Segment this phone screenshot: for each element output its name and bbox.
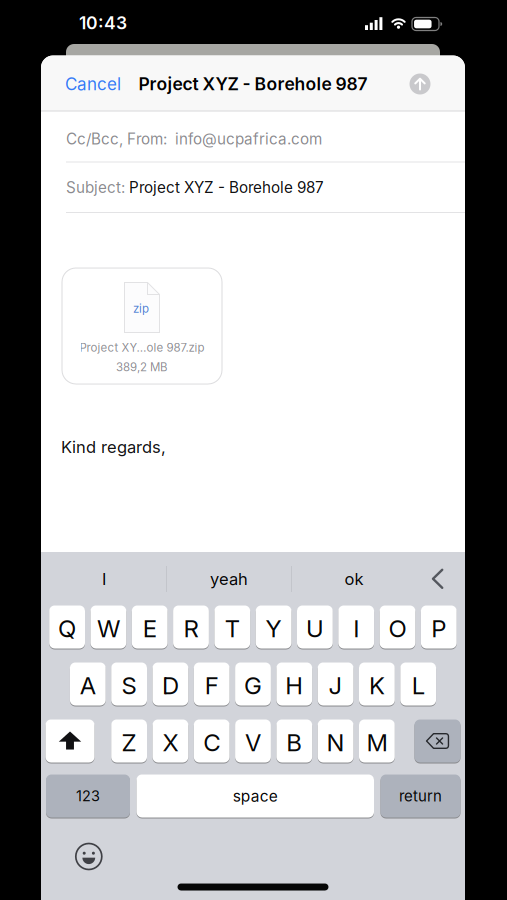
staticText: D <box>162 671 179 700</box>
button[interactable]: T <box>214 605 250 649</box>
button[interactable]: X <box>152 719 188 763</box>
button[interactable]: I <box>338 605 374 649</box>
button[interactable]: Cc/Bcc, From: info@ucpafrica.com <box>66 115 440 163</box>
staticText: ok <box>344 569 363 589</box>
button[interactable]: J <box>318 662 353 706</box>
button[interactable]: S <box>111 662 147 706</box>
button[interactable]: Shift <box>45 719 94 763</box>
staticText: F <box>205 671 219 700</box>
staticText: Cc/Bcc, From: info@ucpafrica.com <box>66 130 322 148</box>
button[interactable]: G <box>235 662 271 706</box>
staticText: 10:43 <box>79 12 127 34</box>
button[interactable]: Hide predictions <box>430 569 446 589</box>
staticText: space <box>233 787 278 805</box>
button[interactable]: R <box>173 605 209 649</box>
button[interactable]: Send <box>409 73 430 94</box>
staticText: S <box>122 671 137 700</box>
button[interactable]: Cancel <box>65 74 121 94</box>
staticText: I <box>102 569 106 589</box>
staticText: Q <box>58 614 76 643</box>
button[interactable]: ok <box>299 562 409 596</box>
staticText: L <box>412 671 425 700</box>
staticText: zip <box>133 301 149 315</box>
button[interactable]: M <box>359 719 395 763</box>
staticText: V <box>245 728 261 757</box>
staticText: 389,2 MB <box>116 360 168 374</box>
staticText: H <box>285 671 303 700</box>
staticText: Y <box>266 614 282 643</box>
staticText: C <box>203 728 220 757</box>
button[interactable]: V <box>235 719 271 763</box>
staticText: J <box>329 671 343 700</box>
staticText: U <box>306 614 324 643</box>
button[interactable]: Q <box>49 605 85 649</box>
button[interactable]: I <box>49 562 159 596</box>
button[interactable]: 123 <box>46 774 130 818</box>
staticText: yeah <box>210 569 248 589</box>
staticText: X <box>162 728 178 757</box>
staticText: A <box>80 671 96 700</box>
staticText: Subject: <box>66 178 129 197</box>
button[interactable]: P <box>421 605 457 649</box>
button[interactable]: F <box>194 662 230 706</box>
staticText: Kind regards, <box>61 437 166 457</box>
button[interactable]: yeah <box>174 562 284 596</box>
button[interactable]: Z <box>111 719 147 763</box>
staticText: T <box>225 614 240 643</box>
button[interactable]: H <box>276 662 312 706</box>
staticText: N <box>327 728 345 757</box>
button[interactable]: W <box>90 605 126 649</box>
staticText: 123 <box>76 787 100 805</box>
button[interactable]: C <box>194 719 230 763</box>
button[interactable]: U <box>297 605 333 649</box>
staticText: P <box>431 614 446 643</box>
button[interactable]: A <box>70 662 106 706</box>
button[interactable]: O <box>380 605 415 649</box>
staticText: Project XYZ - Borehole 987 <box>129 178 324 197</box>
button[interactable]: E <box>132 605 168 649</box>
staticText: E <box>143 614 157 643</box>
button[interactable]: D <box>152 662 188 706</box>
staticText: I <box>353 614 359 643</box>
staticText: G <box>244 671 262 700</box>
staticText: Project XY…ole 987.zip <box>79 340 204 354</box>
staticText: K <box>369 671 385 700</box>
button[interactable]: L <box>400 662 436 706</box>
button[interactable]: K <box>359 662 395 706</box>
button[interactable]: zip <box>62 268 222 384</box>
button[interactable]: return <box>380 774 460 818</box>
staticText: O <box>388 614 406 643</box>
staticText: Project XYZ - Borehole 987 <box>138 73 367 95</box>
button[interactable]: Subject: <box>66 163 440 211</box>
staticText: R <box>183 614 198 643</box>
button[interactable]: N <box>318 719 353 763</box>
button[interactable]: Y <box>256 605 291 649</box>
staticText: return <box>399 787 442 805</box>
button[interactable]: space <box>136 774 374 818</box>
staticText: W <box>97 614 120 643</box>
button[interactable]: Emoji <box>76 843 102 869</box>
staticText: B <box>286 728 302 757</box>
staticText: Cancel <box>65 74 121 94</box>
button[interactable]: B <box>276 719 312 763</box>
button[interactable]: Delete <box>414 719 460 763</box>
staticText: M <box>366 728 387 757</box>
staticText: Z <box>122 728 137 757</box>
